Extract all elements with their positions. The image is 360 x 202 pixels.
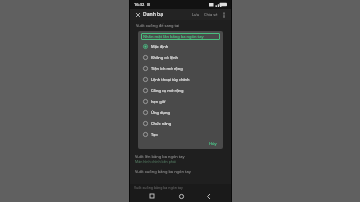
button[interactable]: Gần đây <box>145 190 159 202</box>
staticText: Hủy <box>209 141 217 146</box>
staticText: Vuốt xuống bằng ba ngón tay <box>135 169 191 174</box>
button[interactable]: Nhấn mặt lần bằng ba ngón tay <box>143 34 218 39</box>
staticText: Lưu <box>192 12 200 17</box>
button[interactable]: hẹn giờ <box>141 96 220 107</box>
button[interactable]: Tiện ích mở rộng <box>141 63 220 74</box>
staticText: hẹn giờ <box>151 99 166 104</box>
staticText: Công cụ mở rộng <box>151 88 184 93</box>
staticText: Chức năng <box>151 121 172 126</box>
button[interactable]: Công cụ mở rộng <box>141 85 220 96</box>
staticText: Vuốt xuống để sang tai <box>136 23 180 28</box>
button[interactable]: Lưu <box>191 12 201 17</box>
button[interactable]: Lệnh thoại tùy chỉnh <box>141 74 220 85</box>
staticText: Màn hình chính bên phải <box>135 159 176 164</box>
button[interactable]: Hủy <box>206 140 220 147</box>
button[interactable]: Quay lại <box>202 190 216 202</box>
button[interactable]: Mặc định <box>141 41 220 52</box>
button[interactable]: Đóng <box>133 10 142 19</box>
staticText: 16:32 <box>134 2 145 7</box>
staticText: Không có lệnh <box>151 55 178 60</box>
staticText: Nhấn mặt lần bằng ba ngón tay <box>143 34 204 39</box>
button[interactable]: Chức năng <box>141 118 220 129</box>
staticText: Lệnh thoại tùy chỉnh <box>151 77 190 82</box>
staticText: Tạo <box>151 132 158 137</box>
button[interactable]: Ứng dụng <box>141 107 220 118</box>
button[interactable]: Tùy chọn khác <box>220 11 228 19</box>
staticText: Chia sẻ <box>204 12 218 17</box>
button[interactable]: Trang chủ <box>174 190 188 202</box>
staticText: Ứng dụng <box>151 110 170 115</box>
staticText: Vuốt xuống bằng ba ngón tay <box>134 185 183 190</box>
staticText: Danh bạ <box>143 11 164 18</box>
staticText: Mặc định <box>151 44 169 49</box>
staticText: Tiện ích mở rộng <box>151 66 183 71</box>
button[interactable]: Không có lệnh <box>141 52 220 63</box>
button[interactable]: Chia sẻ <box>203 12 219 17</box>
staticText: Vuốt lên bằng ba ngón tay <box>135 154 185 159</box>
button[interactable]: Tạo <box>141 129 220 140</box>
